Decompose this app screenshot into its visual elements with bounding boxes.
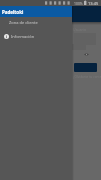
staticText: ¿Olvidaste tu contraseña? (73, 75, 101, 79)
staticText: 100% (74, 1, 83, 6)
button[interactable] (72, 44, 86, 50)
staticText: Zona de cliente (9, 20, 38, 25)
staticText: Información (11, 34, 35, 39)
staticText: 13:45 (88, 1, 99, 6)
button[interactable]: Zona de cliente (0, 18, 72, 27)
button[interactable]: Mostrar contraseña (84, 52, 89, 57)
staticText: Padeltoki (2, 9, 24, 15)
button[interactable] (74, 63, 97, 72)
button[interactable]: Información (0, 32, 72, 41)
staticText: Usuario (73, 27, 87, 32)
